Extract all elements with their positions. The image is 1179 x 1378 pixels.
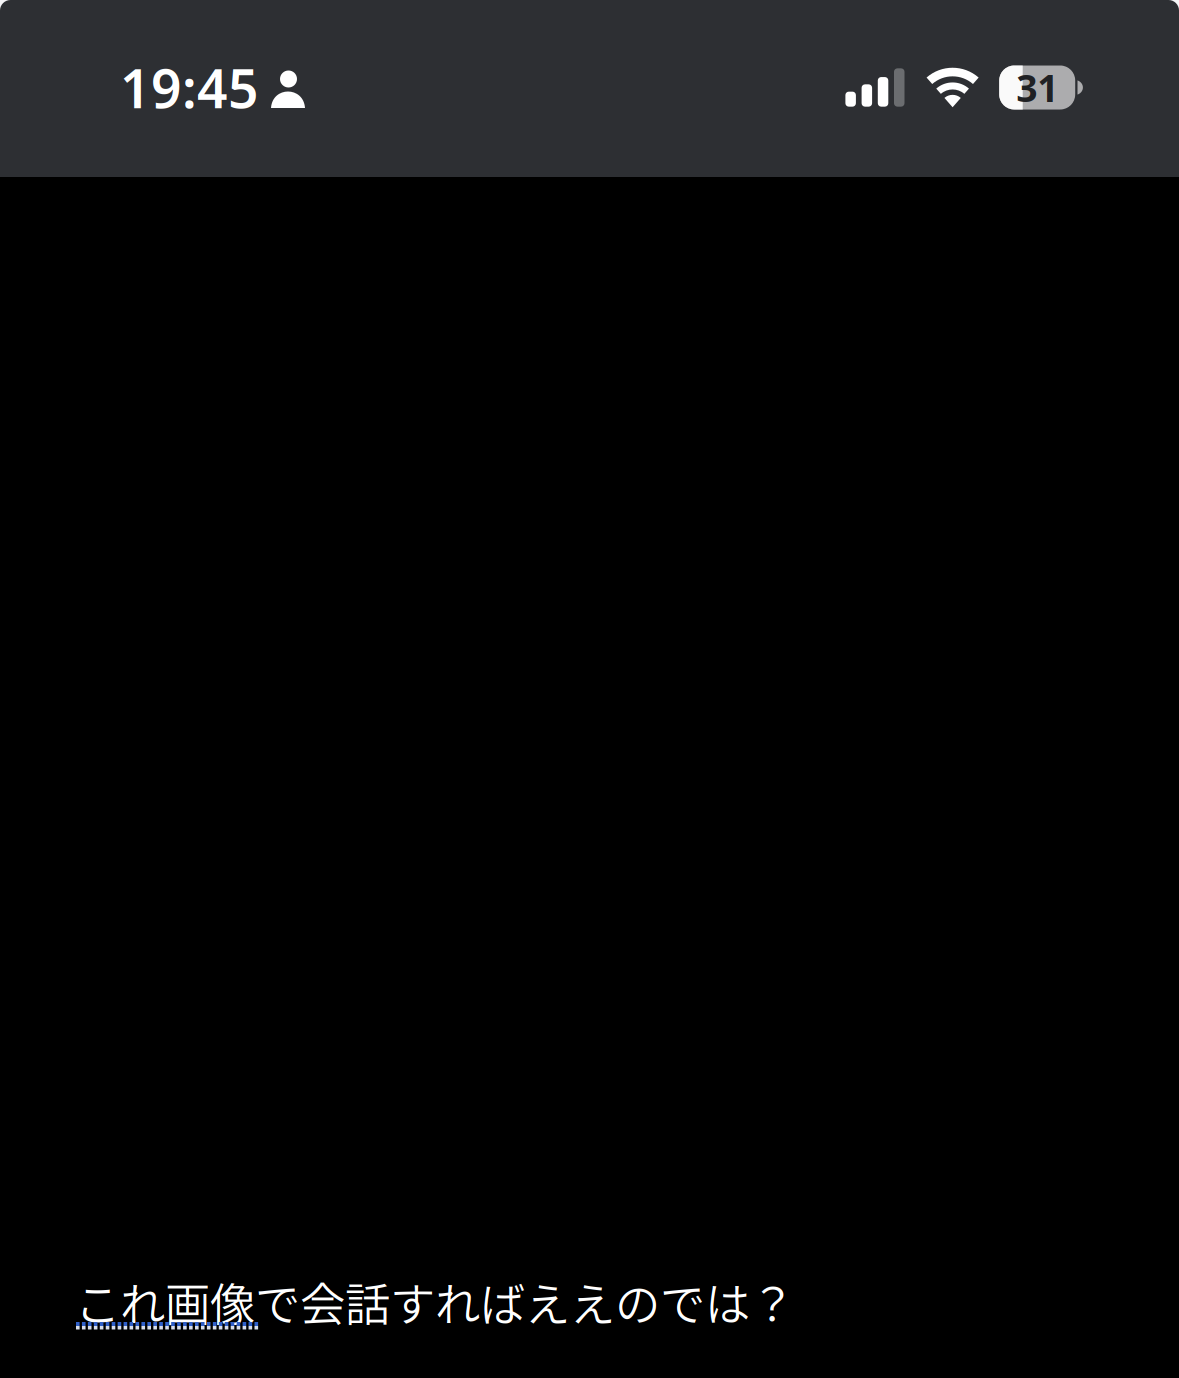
button[interactable]: これ画像で会話すればええのでは？ xyxy=(75,1269,795,1331)
staticText: 19:45 xyxy=(120,52,259,123)
staticText: これ画像で会話すればええのでは？ xyxy=(75,1269,795,1335)
staticText: 31 xyxy=(1016,63,1058,112)
